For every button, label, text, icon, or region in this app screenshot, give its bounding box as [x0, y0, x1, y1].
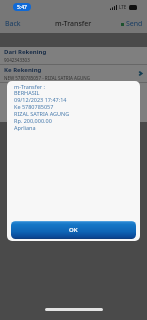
- staticText: m-Transfer: [55, 19, 92, 29]
- staticText: Ke Rekening: [4, 66, 42, 74]
- button[interactable]: OK: [11, 221, 136, 239]
- button[interactable]: Dari Rekening: [0, 47, 147, 64]
- staticText: Dari Rekening: [4, 48, 47, 56]
- button[interactable]: Send: [116, 16, 147, 32]
- staticText: m-Transfer : BERHASIL 09/12/2023 17:47:1…: [14, 83, 70, 132]
- other: Open: [137, 70, 144, 77]
- staticText: NEW 5780785057 - RIZAL SATRIA AGUNG: [4, 75, 91, 81]
- staticText: OK: [69, 226, 78, 234]
- button[interactable]: Back: [0, 16, 26, 32]
- staticText: LTE: [119, 4, 127, 10]
- staticText: Back: [5, 19, 21, 29]
- button[interactable]: Ke Rekening: [0, 65, 147, 82]
- staticText: 5:47: [17, 4, 27, 11]
- staticText: Send: [126, 19, 143, 29]
- staticText: 9042343303: [4, 57, 30, 63]
